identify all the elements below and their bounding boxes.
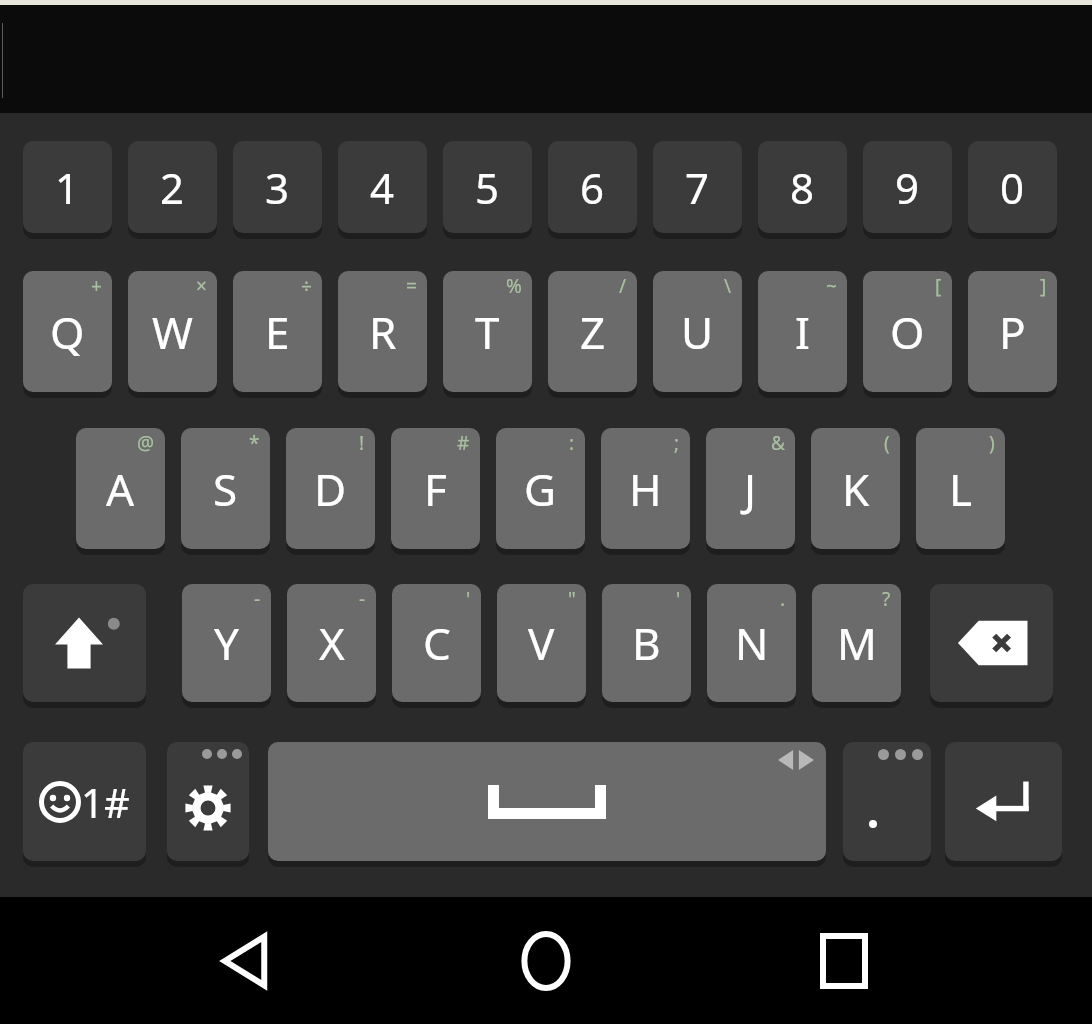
staticText: * — [249, 430, 260, 456]
staticText: J — [744, 459, 757, 519]
staticText: U — [681, 302, 714, 362]
staticText: . — [780, 586, 786, 612]
staticText: P — [999, 302, 1026, 362]
button[interactable]: R — [338, 271, 427, 392]
staticText: 8 — [790, 159, 815, 216]
staticText: ~ — [826, 273, 837, 299]
button[interactable]: 3 — [233, 141, 322, 233]
staticText: N — [735, 613, 769, 673]
staticText: 0 — [1000, 159, 1025, 216]
button[interactable]: 9 — [863, 141, 952, 233]
staticText: O — [890, 302, 925, 362]
staticText: 4 — [370, 159, 395, 216]
button[interactable]: Y — [182, 584, 271, 702]
button[interactable]: Emoji and symbols — [23, 742, 146, 861]
button[interactable]: J — [706, 428, 795, 549]
button[interactable]: V — [497, 584, 586, 702]
staticText: 9 — [895, 159, 920, 216]
staticText: M — [837, 613, 877, 673]
button[interactable]: Recent apps — [794, 911, 894, 1011]
staticText: - — [359, 586, 366, 612]
staticText: @ — [137, 430, 155, 456]
button[interactable]: Back — [198, 911, 298, 1011]
staticText: E — [265, 302, 290, 362]
staticText: V — [528, 613, 555, 673]
button[interactable]: Period — [843, 742, 931, 861]
button[interactable]: P — [968, 271, 1057, 392]
button[interactable]: L — [916, 428, 1005, 549]
button[interactable]: K — [811, 428, 900, 549]
button[interactable]: 7 — [653, 141, 742, 233]
button[interactable]: H — [601, 428, 690, 549]
button[interactable]: A — [76, 428, 165, 549]
button[interactable]: 8 — [758, 141, 847, 233]
staticText: F — [424, 459, 447, 519]
staticText: & — [771, 430, 785, 456]
staticText: × — [196, 273, 207, 299]
staticText: G — [524, 459, 557, 519]
staticText: 1 — [55, 159, 80, 216]
staticText: 1# — [81, 775, 130, 829]
button[interactable]: 0 — [968, 141, 1057, 233]
staticText: C — [423, 613, 451, 673]
staticText: 5 — [475, 159, 500, 216]
staticText: ' — [676, 586, 681, 612]
button[interactable]: D — [286, 428, 375, 549]
button[interactable]: Backspace — [930, 584, 1053, 702]
button[interactable]: E — [233, 271, 322, 392]
staticText: ; — [674, 430, 680, 456]
staticText: 7 — [685, 159, 710, 216]
staticText: - — [254, 586, 261, 612]
staticText: D — [314, 459, 347, 519]
staticText: ! — [359, 430, 365, 456]
staticText: ' — [466, 586, 471, 612]
button[interactable]: M — [812, 584, 901, 702]
staticText: Y — [214, 613, 239, 673]
button[interactable]: 2 — [128, 141, 217, 233]
staticText: = — [406, 273, 417, 299]
staticText: ) — [989, 430, 995, 456]
staticText: ( — [884, 430, 890, 456]
staticText: Q — [50, 302, 85, 362]
staticText: I — [795, 302, 810, 362]
staticText: # — [457, 430, 470, 456]
staticText: [ — [935, 273, 942, 299]
staticText: 6 — [580, 159, 605, 216]
button[interactable]: 6 — [548, 141, 637, 233]
button[interactable]: Space — [268, 742, 826, 861]
button[interactable]: C — [392, 584, 481, 702]
button[interactable]: N — [707, 584, 796, 702]
button[interactable]: W — [128, 271, 217, 392]
button[interactable]: Q — [23, 271, 112, 392]
button[interactable]: Enter — [945, 742, 1062, 861]
staticText: W — [152, 302, 193, 362]
staticText: A — [106, 459, 135, 519]
button[interactable]: 5 — [443, 141, 532, 233]
button[interactable]: X — [287, 584, 376, 702]
button[interactable]: Home — [496, 911, 596, 1011]
button[interactable]: Shift — [23, 584, 146, 702]
button[interactable]: F — [391, 428, 480, 549]
staticText: " — [568, 586, 576, 612]
button[interactable]: 4 — [338, 141, 427, 233]
button[interactable]: 1 — [23, 141, 112, 233]
button[interactable]: T — [443, 271, 532, 392]
button[interactable]: G — [496, 428, 585, 549]
staticText: ? — [882, 586, 891, 612]
staticText: / — [619, 273, 627, 299]
button[interactable]: U — [653, 271, 742, 392]
staticText: H — [629, 459, 662, 519]
button[interactable]: Z — [548, 271, 637, 392]
staticText: B — [632, 613, 661, 673]
button[interactable]: S — [181, 428, 270, 549]
staticText: Z — [580, 302, 606, 362]
staticText: K — [842, 459, 870, 519]
staticText: + — [91, 273, 102, 299]
staticText: : — [569, 430, 575, 456]
staticText: 2 — [160, 159, 185, 216]
button[interactable]: O — [863, 271, 952, 392]
staticText: T — [475, 302, 500, 362]
button[interactable]: Keyboard settings — [167, 742, 249, 861]
button[interactable]: I — [758, 271, 847, 392]
button[interactable]: B — [602, 584, 691, 702]
